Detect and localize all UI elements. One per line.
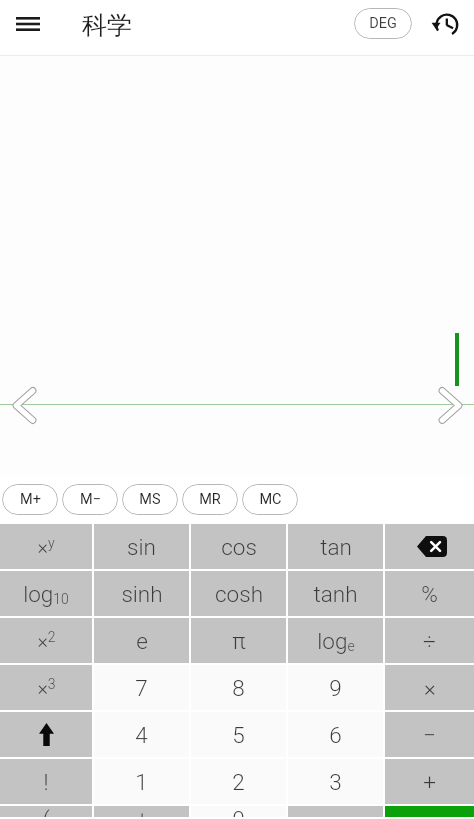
staticText: ×3 (37, 676, 56, 700)
button[interactable]: DEG (354, 8, 412, 39)
button[interactable]: 1 (94, 759, 189, 804)
button[interactable]: 4 (94, 712, 189, 757)
staticText: sinh (121, 581, 163, 607)
staticText: 8 (232, 675, 245, 701)
button[interactable]: e (94, 618, 189, 663)
staticText: M− (80, 491, 101, 508)
button[interactable]: MS (122, 484, 178, 515)
staticText: MR (199, 491, 221, 508)
button[interactable]: Scroll expression right (428, 383, 472, 427)
button[interactable]: ( (0, 806, 92, 817)
staticText: MS (139, 491, 161, 508)
button[interactable]: log10 (0, 571, 92, 616)
button[interactable]: Open navigation menu (0, 0, 55, 55)
button[interactable]: cosh (191, 571, 286, 616)
staticText: 2 (232, 769, 245, 795)
button[interactable]: 9 (288, 665, 383, 710)
staticText: 5 (232, 722, 245, 748)
button[interactable]: 0 (191, 806, 286, 817)
staticText: ÷ (423, 628, 436, 654)
staticText: ± (136, 806, 148, 817)
staticText: tanh (313, 581, 358, 607)
staticText: loge (317, 628, 355, 654)
staticText: e (136, 628, 148, 654)
button[interactable]: ×3 (0, 665, 92, 710)
staticText: tan (320, 534, 352, 560)
button[interactable]: ! (0, 759, 92, 804)
staticText: 7 (135, 675, 148, 701)
staticText: cos (221, 534, 257, 560)
staticText: 科学 (82, 10, 132, 41)
staticText: × (424, 675, 436, 701)
staticText: − (423, 722, 436, 748)
staticText: ( (42, 806, 50, 817)
staticText: 4 (135, 722, 148, 748)
staticText: 6 (329, 722, 342, 748)
button[interactable]: Shift (0, 712, 92, 757)
button[interactable]: π (191, 618, 286, 663)
staticText: 3 (329, 769, 342, 795)
staticText: ×2 (37, 629, 56, 653)
button[interactable]: M+ (2, 484, 58, 515)
button[interactable]: History (427, 4, 474, 51)
button[interactable]: 6 (288, 712, 383, 757)
other: Backspace (385, 524, 474, 569)
button[interactable]: tanh (288, 571, 383, 616)
button[interactable]: ×y (0, 524, 92, 569)
staticText: 1 (135, 769, 148, 795)
button[interactable]: MC (242, 484, 298, 515)
button[interactable]: − (385, 712, 474, 757)
staticText: DEG (369, 15, 397, 32)
button[interactable]: loge (288, 618, 383, 663)
staticText: 9 (329, 675, 342, 701)
button[interactable]: cos (191, 524, 286, 569)
button[interactable]: sin (94, 524, 189, 569)
button[interactable]: + (385, 759, 474, 804)
staticText: cosh (215, 581, 263, 607)
button[interactable]: 2 (191, 759, 286, 804)
staticText: ×y (37, 535, 55, 559)
button[interactable]: 5 (191, 712, 286, 757)
button[interactable]: % (385, 571, 474, 616)
button[interactable]: 3 (288, 759, 383, 804)
staticText: log10 (23, 581, 69, 607)
button[interactable]: 8 (191, 665, 286, 710)
button[interactable]: ± (94, 806, 189, 817)
button[interactable]: M− (62, 484, 118, 515)
button[interactable]: tan (288, 524, 383, 569)
staticText: ! (43, 769, 49, 795)
staticText: % (421, 581, 438, 607)
staticText: 0 (232, 806, 245, 817)
staticText: MC (259, 491, 282, 508)
button[interactable]: Backspace (385, 524, 474, 569)
button[interactable]: ×2 (0, 618, 92, 663)
staticText: sin (127, 534, 156, 560)
button[interactable]: ÷ (385, 618, 474, 663)
button[interactable]: sinh (94, 571, 189, 616)
button[interactable]: Scroll expression left (2, 383, 46, 427)
other: Shift (0, 712, 92, 757)
button[interactable]: 7 (94, 665, 189, 710)
staticText: M+ (20, 491, 41, 508)
staticText: π (232, 628, 246, 654)
staticText: + (423, 769, 436, 795)
button[interactable]: × (385, 665, 474, 710)
button[interactable]: MR (182, 484, 238, 515)
